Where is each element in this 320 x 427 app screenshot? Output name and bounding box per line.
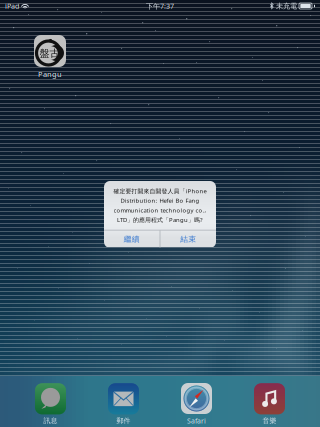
button[interactable]: 盤古	[19, 35, 81, 79]
button[interactable]: 音樂	[241, 383, 297, 425]
staticText: LTD」的應用程式「Pangu」嗎?	[117, 216, 203, 224]
staticText: 未充電	[276, 1, 297, 11]
staticText: 盤古	[39, 47, 59, 60]
button[interactable]: 繼續	[104, 230, 160, 248]
button[interactable]: 訊息	[22, 383, 78, 425]
button[interactable]: 結束	[160, 230, 216, 248]
staticText: Safari	[187, 416, 206, 425]
staticText: 音樂	[262, 416, 276, 425]
button[interactable]: 郵件	[95, 383, 151, 425]
staticText: 結束	[180, 234, 196, 244]
staticText: Distribution: Hefei Bo Fang	[120, 197, 199, 205]
staticText: 郵件	[116, 416, 130, 425]
staticText: Pangu	[38, 69, 62, 79]
staticText: iPad	[5, 1, 19, 11]
button[interactable]: Safari	[168, 383, 224, 425]
staticText: 訊息	[43, 416, 57, 425]
staticText: 下午7:37	[146, 1, 174, 11]
staticText: 繼續	[124, 234, 140, 244]
staticText: communication technology co.,	[113, 206, 206, 214]
staticText: 確定要打開來自開發人員「iPhone	[113, 187, 206, 195]
